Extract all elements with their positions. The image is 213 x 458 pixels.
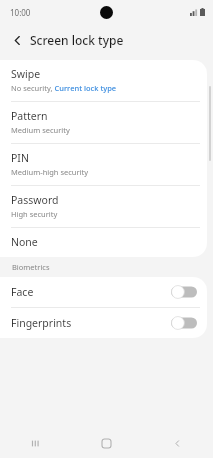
- staticText: Screen lock type: [30, 32, 124, 48]
- button[interactable]: Swipe: [0, 60, 207, 101]
- staticText: Fingerprints: [11, 316, 72, 330]
- button[interactable]: Face: [0, 277, 207, 307]
- staticText: Password: [11, 193, 59, 207]
- button[interactable]: PIN: [0, 144, 207, 185]
- button[interactable]: Pattern: [0, 102, 207, 143]
- staticText: None: [11, 235, 38, 249]
- button[interactable]: None: [0, 228, 207, 257]
- staticText: Swipe: [11, 67, 41, 81]
- button[interactable]: Home: [71, 428, 142, 458]
- staticText: Biometrics: [12, 262, 50, 272]
- button[interactable]: Recents: [0, 428, 71, 458]
- staticText: 10:00: [10, 7, 31, 18]
- staticText: PIN: [11, 151, 29, 165]
- button[interactable]: Back: [6, 29, 28, 51]
- staticText: Face: [11, 285, 34, 299]
- button[interactable]: Password: [0, 186, 207, 227]
- staticText: Medium-high security: [11, 167, 89, 177]
- button[interactable]: Fingerprints: [0, 308, 207, 338]
- staticText: High security: [11, 209, 58, 219]
- staticText: Medium security: [11, 125, 70, 135]
- staticText: Pattern: [11, 109, 48, 123]
- staticText: No security, Current lock type: [11, 83, 117, 93]
